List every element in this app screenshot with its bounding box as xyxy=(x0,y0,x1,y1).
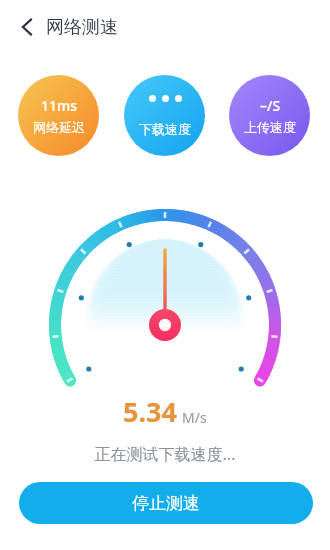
button[interactable]: Back xyxy=(12,12,42,42)
staticText: 网络测速 xyxy=(46,16,118,39)
staticText: 5.34 xyxy=(123,393,177,430)
button[interactable]: 下载速度 xyxy=(124,75,205,156)
staticText: 正在测试下载速度... xyxy=(0,443,330,465)
button[interactable]: –/S xyxy=(229,75,310,156)
staticText: –/S xyxy=(260,96,281,115)
button[interactable]: 11ms xyxy=(18,75,99,156)
button[interactable]: 停止测速 xyxy=(19,482,313,524)
staticText: 11ms xyxy=(41,96,78,115)
staticText: 上传速度 xyxy=(244,119,296,135)
staticText: 停止测速 xyxy=(132,493,200,514)
staticText: M/s xyxy=(182,408,207,427)
staticText: 下载速度 xyxy=(139,121,191,137)
staticText: 网络延迟 xyxy=(33,119,85,135)
